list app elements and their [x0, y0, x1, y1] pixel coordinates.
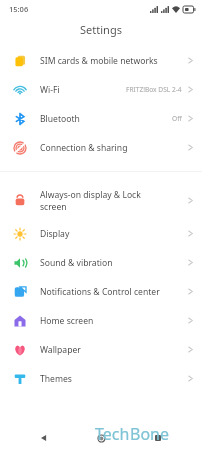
button[interactable]: Notifications & Control center: [0, 277, 202, 306]
staticText: Wallpaper: [40, 344, 188, 356]
staticText: Off: [172, 114, 182, 123]
staticText: Home screen: [40, 315, 188, 327]
button[interactable]: Recents: [145, 426, 171, 450]
button[interactable]: Sound & vibration: [0, 248, 202, 277]
staticText: Bone: [130, 423, 169, 445]
button[interactable]: Always-on display & Lock screen: [0, 181, 202, 219]
staticText: Settings: [80, 22, 122, 37]
button[interactable]: Wi-Fi: [0, 75, 202, 104]
button[interactable]: Home screen: [0, 306, 202, 335]
staticText: Sound & vibration: [40, 257, 188, 269]
staticText: FRITZ!Box DSL 2-4: [126, 85, 182, 94]
staticText: Always-on display & Lock screen: [40, 189, 188, 212]
staticText: Display: [40, 228, 188, 240]
button[interactable]: Themes: [0, 364, 202, 393]
staticText: Themes: [40, 373, 188, 385]
staticText: Wi-Fi: [40, 84, 126, 96]
staticText: 15:06: [9, 4, 29, 14]
button[interactable]: Display: [0, 219, 202, 248]
button[interactable]: Wallpaper: [0, 335, 202, 364]
button[interactable]: Back: [31, 426, 57, 450]
staticText: Connection & sharing: [40, 142, 188, 154]
staticText: Bluetooth: [40, 113, 172, 125]
button[interactable]: Connection & sharing: [0, 133, 202, 162]
staticText: Tech: [95, 423, 130, 445]
staticText: Notifications & Control center: [40, 286, 188, 298]
staticText: SIM cards & mobile networks: [40, 55, 188, 67]
button[interactable]: Home: [88, 426, 114, 450]
button[interactable]: Bluetooth: [0, 104, 202, 133]
button[interactable]: SIM cards & mobile networks: [0, 46, 202, 75]
